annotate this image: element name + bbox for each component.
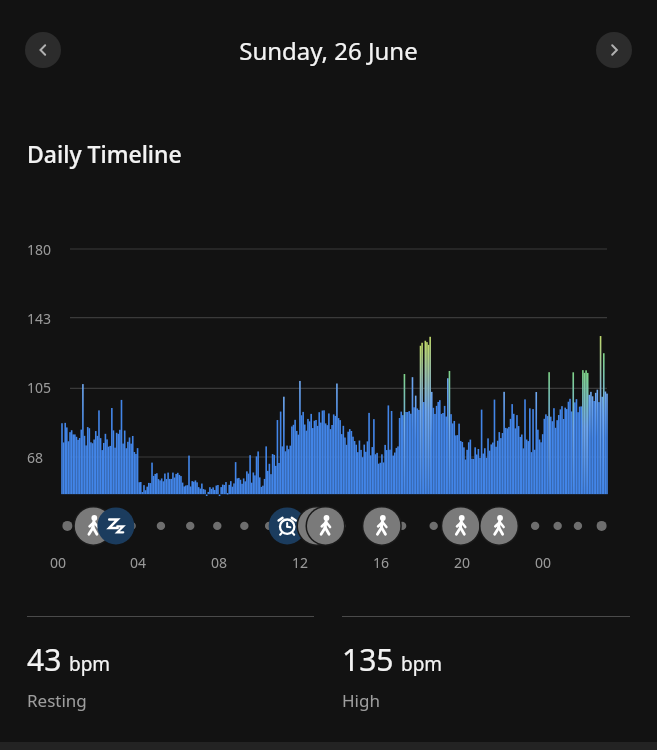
staticText: 12 [292,553,309,572]
staticText: 00 [50,553,67,572]
staticText: Resting [27,689,87,712]
staticText: 00 [535,553,552,572]
button[interactable]: Next day [596,32,632,68]
staticText: High [342,689,380,712]
staticText: 16 [373,553,390,572]
staticText: 43 [27,639,62,680]
staticText: 08 [211,553,228,572]
button[interactable]: 135 [342,616,630,712]
button[interactable]: 43 [27,616,314,712]
button[interactable]: Previous day [25,32,61,68]
staticText: 135 [342,639,394,680]
staticText: 68 [27,448,44,467]
staticText: 180 [27,240,52,259]
staticText: Daily Timeline [27,138,182,169]
staticText: 143 [27,309,52,328]
staticText: Sunday, 26 June [239,34,418,67]
staticText: 105 [27,378,52,397]
staticText: bpm [69,651,111,677]
staticText: bpm [401,651,443,677]
staticText: 20 [454,553,471,572]
staticText: 04 [130,553,147,572]
